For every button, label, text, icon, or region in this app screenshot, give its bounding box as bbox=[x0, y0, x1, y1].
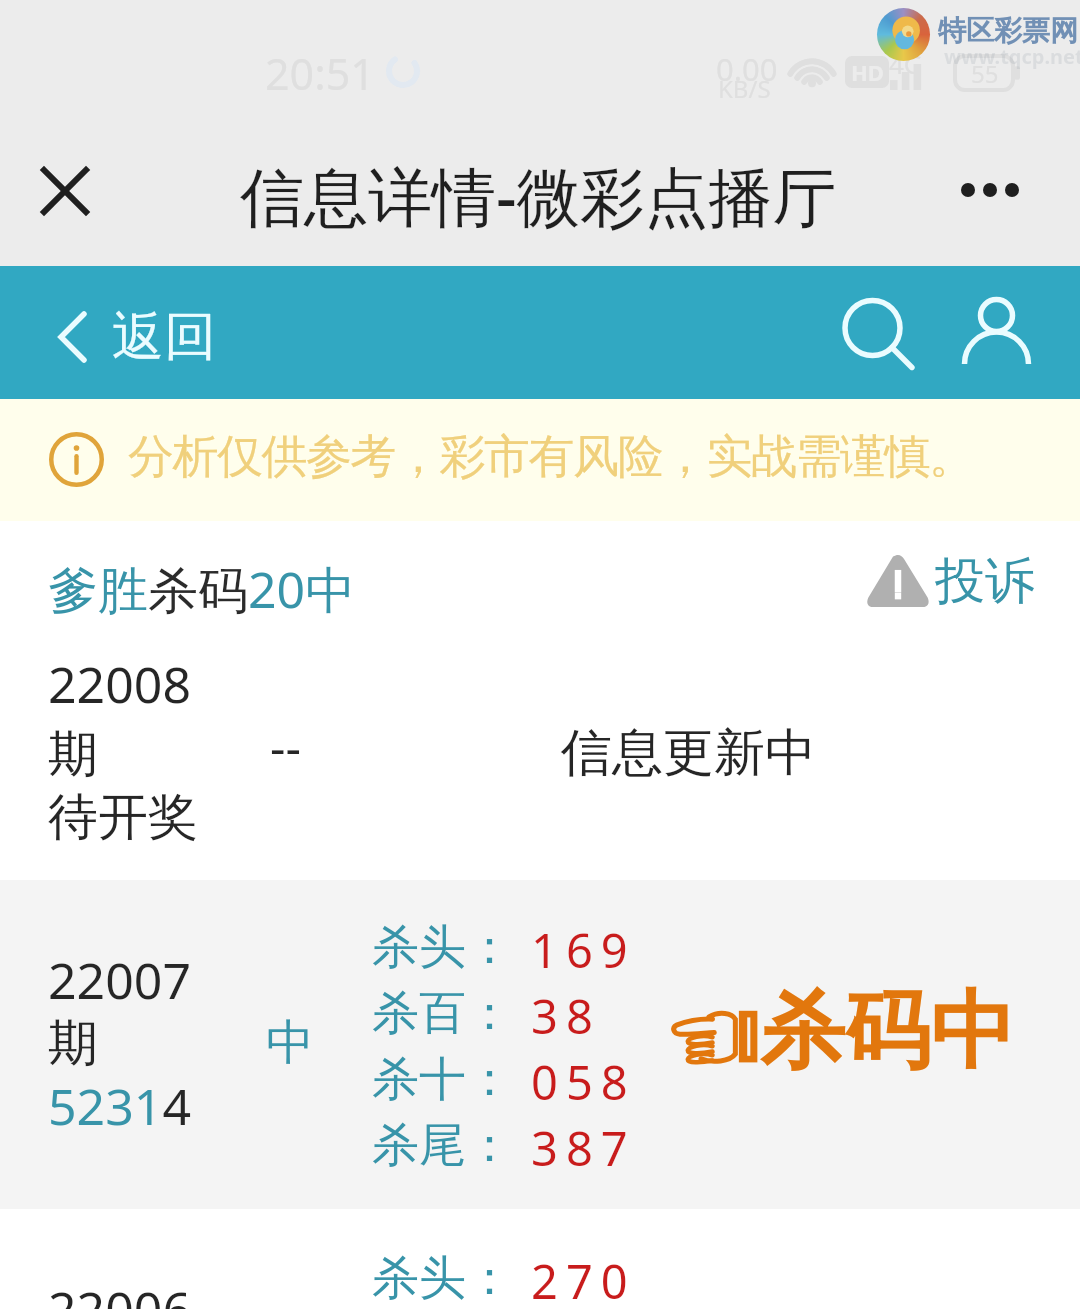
staticText: 52314 bbox=[48, 1072, 191, 1140]
staticText: 杀尾： bbox=[372, 1116, 513, 1175]
button[interactable]: 返回 bbox=[44, 292, 230, 382]
staticText: 期 bbox=[48, 723, 98, 786]
staticText: 杀码中 bbox=[760, 978, 1015, 1085]
staticText: 待开奖 bbox=[48, 786, 198, 849]
staticText: HD bbox=[851, 57, 884, 87]
staticText: 爹胜杀码20中 bbox=[48, 555, 356, 623]
staticText: 中 bbox=[266, 1013, 314, 1073]
staticText: 058 bbox=[531, 1050, 636, 1114]
staticText: 20:51 bbox=[265, 44, 375, 103]
staticText: 杀十： bbox=[372, 1050, 513, 1109]
staticText: 0.00 bbox=[716, 48, 778, 90]
staticText: KB/S bbox=[718, 72, 771, 105]
button[interactable]: 22006 bbox=[0, 1209, 1080, 1309]
staticText: 杀百： bbox=[372, 984, 513, 1043]
button[interactable]: 22008 bbox=[0, 640, 1080, 880]
staticText: 信息更新中 bbox=[561, 721, 816, 785]
staticText: 信息详情-微彩点播厅 bbox=[240, 152, 837, 239]
staticText: 38 bbox=[531, 984, 601, 1048]
staticText: 杀头： bbox=[372, 1249, 513, 1308]
staticText: 期 bbox=[48, 1012, 98, 1075]
staticText: 387 bbox=[531, 1116, 636, 1180]
staticText: 投诉 bbox=[935, 550, 1035, 613]
staticText: 4G bbox=[889, 46, 923, 81]
staticText: 169 bbox=[531, 918, 636, 982]
button[interactable]: 22007 bbox=[0, 880, 1080, 1209]
staticText: 杀头： bbox=[372, 918, 513, 977]
staticText: 返回 bbox=[112, 304, 216, 370]
staticText: 22007 bbox=[48, 946, 191, 1014]
staticText: 270 bbox=[531, 1249, 636, 1309]
staticText: 22006 bbox=[48, 1275, 191, 1309]
staticText: 22008 bbox=[48, 650, 191, 718]
staticText: 分析仅供参考，彩市有风险，实战需谨慎。 bbox=[128, 428, 974, 486]
button[interactable]: 投诉 bbox=[857, 543, 1045, 619]
staticText: www.tqcp.net bbox=[944, 43, 1080, 70]
button[interactable]: More options bbox=[940, 145, 1040, 235]
button[interactable]: Search bbox=[826, 280, 926, 380]
button[interactable]: Close bbox=[18, 145, 108, 235]
button[interactable]: Profile bbox=[948, 280, 1048, 380]
staticText: -- bbox=[270, 714, 301, 779]
staticText: 55 bbox=[971, 57, 999, 90]
staticText: 特区彩票网 bbox=[938, 13, 1078, 48]
